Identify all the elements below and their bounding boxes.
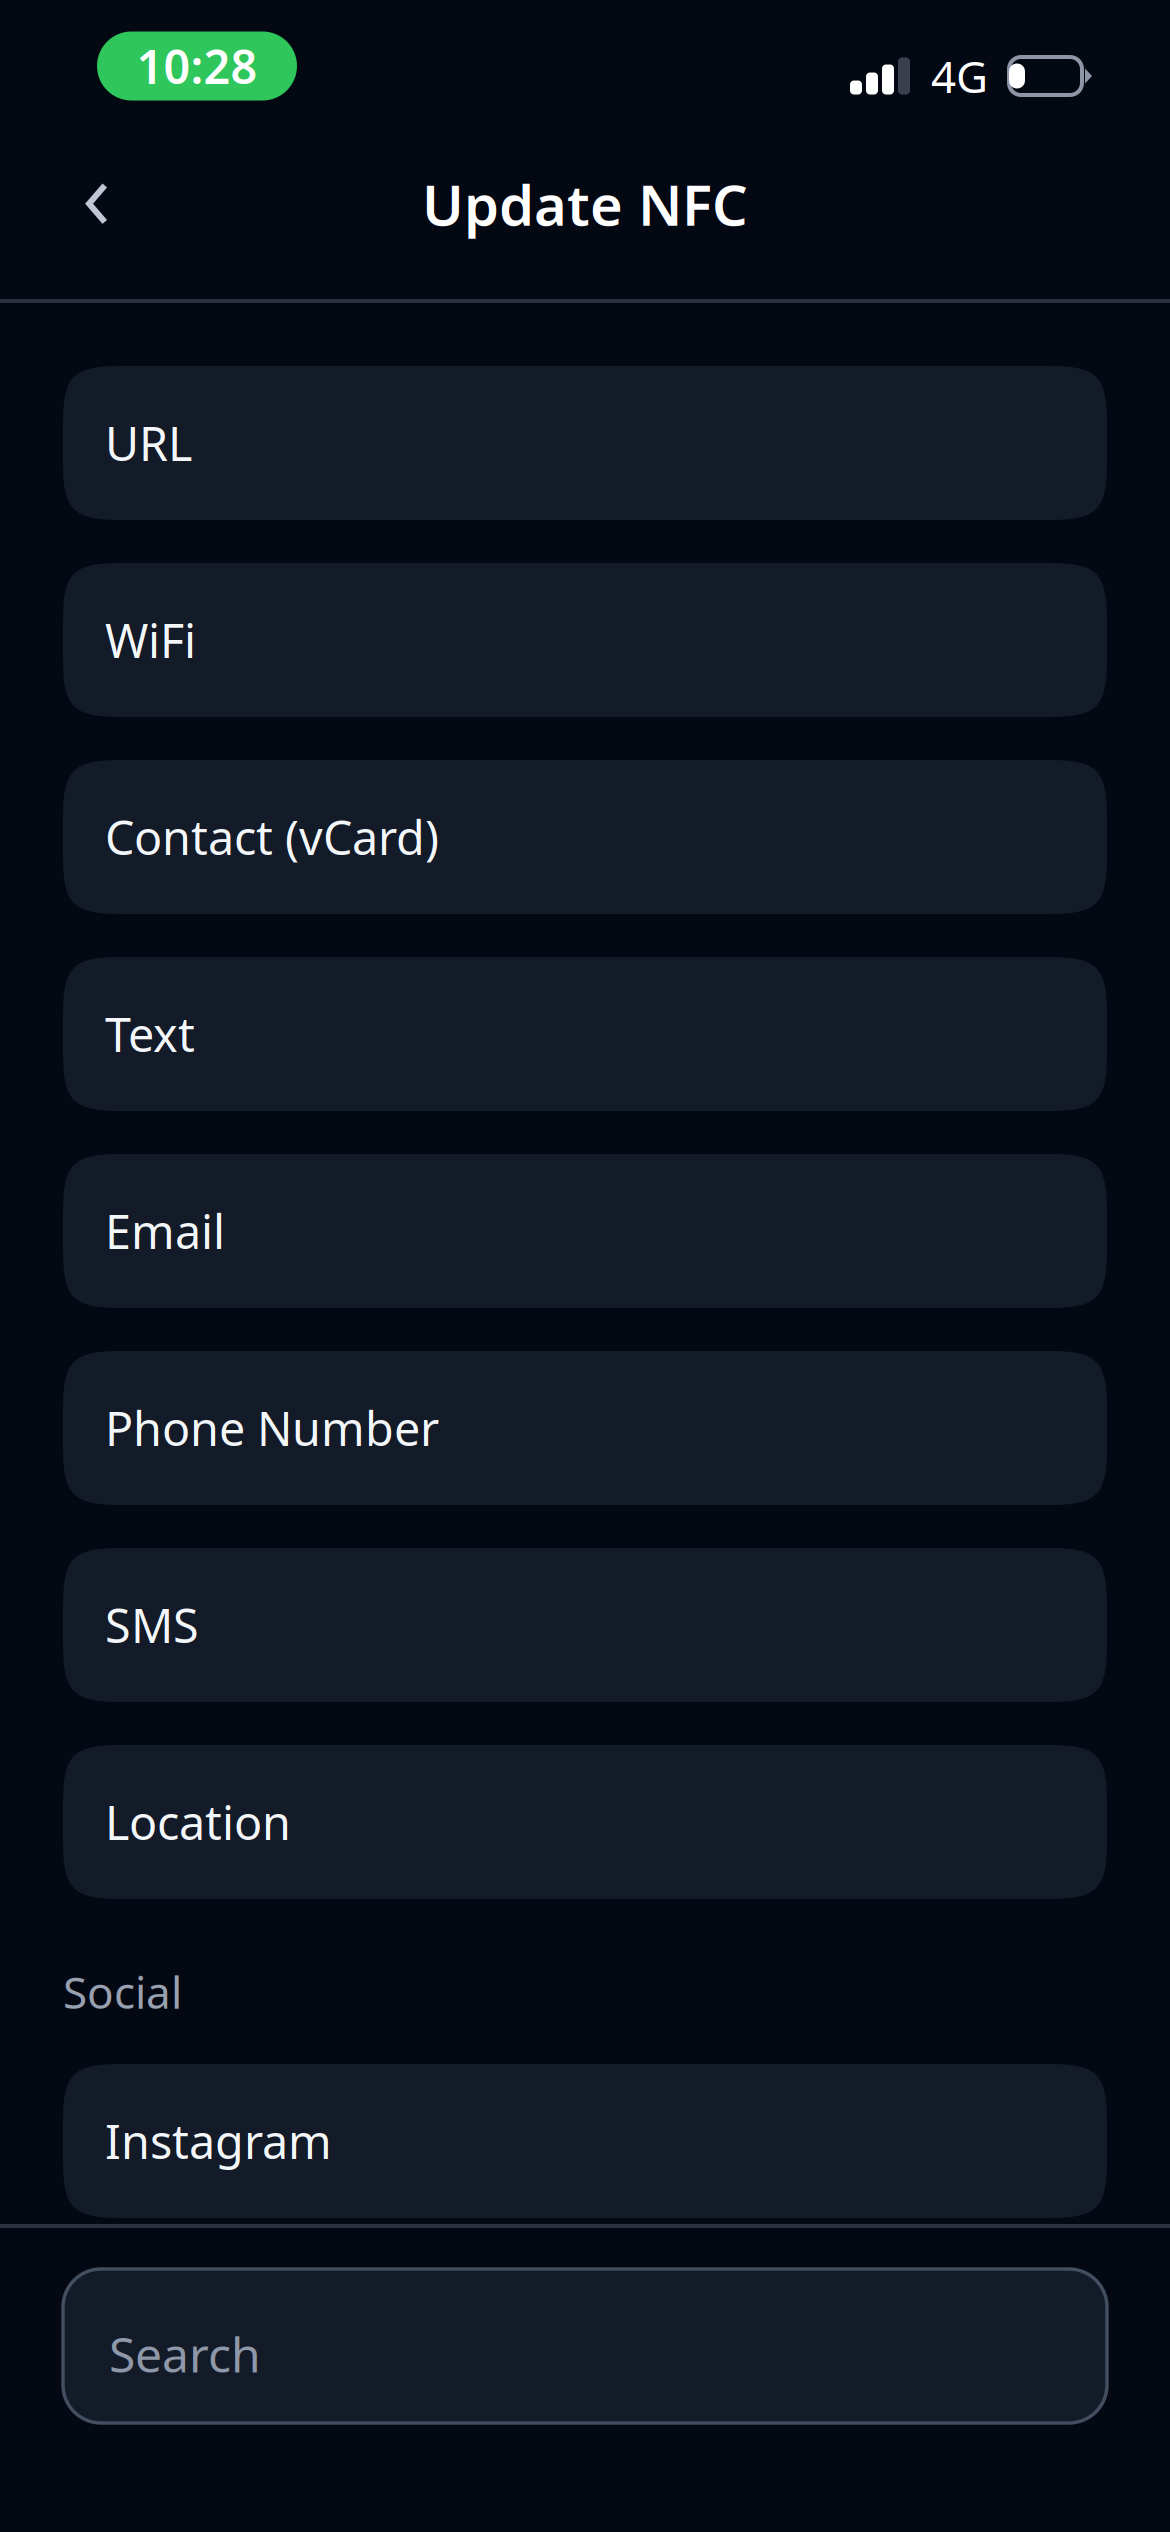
button[interactable]: Phone Number <box>63 1351 1107 1505</box>
staticText: Social <box>63 1963 182 2021</box>
staticText: URL <box>105 412 192 474</box>
button[interactable]: URL <box>63 366 1107 520</box>
staticText: Phone Number <box>105 1397 439 1459</box>
button[interactable]: Search <box>63 2269 1107 2423</box>
button[interactable]: SMS <box>63 1548 1107 1702</box>
staticText: 10:28 <box>136 35 257 97</box>
staticText: Email <box>105 1200 225 1262</box>
button[interactable]: Back <box>38 145 156 263</box>
staticText: Contact (vCard) <box>105 806 439 868</box>
staticText: Location <box>105 1791 291 1853</box>
staticText: Search <box>109 2322 261 2386</box>
button[interactable]: Text <box>63 957 1107 1111</box>
button[interactable]: Email <box>63 1154 1107 1308</box>
button[interactable]: Instagram <box>63 2064 1107 2218</box>
staticText: Instagram <box>105 2110 332 2172</box>
staticText: Text <box>105 1003 195 1065</box>
button[interactable]: Location <box>63 1745 1107 1899</box>
staticText: Update NFC <box>422 167 748 241</box>
button[interactable]: WiFi <box>63 563 1107 717</box>
staticText: SMS <box>105 1594 199 1656</box>
staticText: WiFi <box>105 609 196 671</box>
staticText: 4G <box>931 47 988 105</box>
button[interactable]: Contact (vCard) <box>63 760 1107 914</box>
